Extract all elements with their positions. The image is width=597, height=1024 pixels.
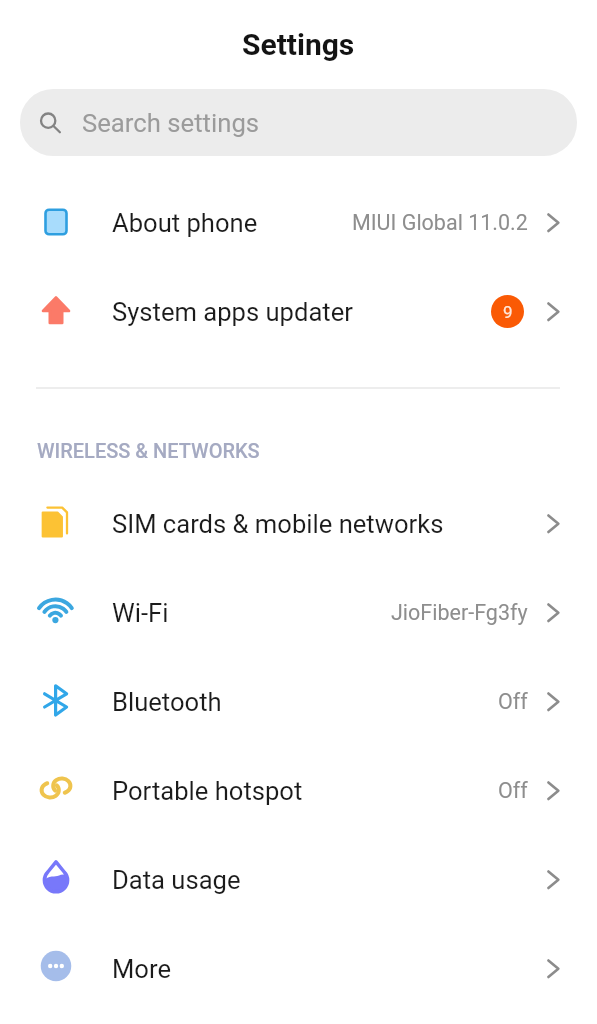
staticText: MIUI Global 11.0.2 bbox=[352, 210, 528, 235]
button[interactable]: Portable hotspot bbox=[0, 746, 597, 835]
other: Open Data usage bbox=[537, 868, 561, 892]
button[interactable]: Data usage bbox=[0, 835, 597, 924]
button[interactable]: Search settings bbox=[20, 89, 577, 156]
other: Open Portable hotspot bbox=[537, 779, 561, 803]
button[interactable]: Bluetooth bbox=[0, 657, 597, 746]
staticText: Bluetooth bbox=[112, 687, 222, 717]
other: Open System apps updater bbox=[537, 300, 561, 324]
staticText: JioFiber-Fg3fy bbox=[391, 600, 528, 625]
other: Open About phone bbox=[537, 211, 561, 235]
staticText: Data usage bbox=[112, 865, 241, 895]
staticText: Off bbox=[498, 689, 528, 714]
staticText: About phone bbox=[112, 208, 258, 238]
button[interactable]: More bbox=[0, 924, 597, 1013]
other: Open Wi-Fi bbox=[537, 601, 561, 625]
button[interactable]: About phone bbox=[0, 178, 597, 267]
staticText: Search settings bbox=[82, 108, 260, 138]
staticText: 9 bbox=[503, 302, 513, 322]
button[interactable]: Wi-Fi bbox=[0, 568, 597, 657]
staticText: More bbox=[112, 954, 171, 984]
staticText: Wi-Fi bbox=[112, 598, 169, 628]
staticText: WIRELESS & NETWORKS bbox=[37, 439, 260, 462]
staticText: SIM cards & mobile networks bbox=[112, 509, 444, 539]
staticText: Portable hotspot bbox=[112, 776, 303, 806]
other: Open More bbox=[537, 957, 561, 981]
staticText: Settings bbox=[242, 27, 355, 62]
staticText: Off bbox=[498, 778, 528, 803]
other: Open Bluetooth bbox=[537, 690, 561, 714]
button[interactable]: System apps updater bbox=[0, 267, 597, 356]
other: Open SIM cards & mobile networks bbox=[537, 512, 561, 536]
staticText: System apps updater bbox=[112, 297, 353, 327]
button[interactable]: SIM cards & mobile networks bbox=[0, 479, 597, 568]
